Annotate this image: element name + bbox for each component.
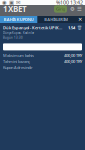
staticText: Bugün 13:30 bbox=[3, 36, 23, 39]
button[interactable]: BAHİSLERİM bbox=[37, 16, 75, 23]
staticText: ✕ bbox=[78, 16, 82, 23]
staticText: 1.54 bbox=[68, 25, 75, 30]
staticText: Giriş bbox=[56, 6, 65, 12]
staticText: BAHİS KUPONU bbox=[4, 17, 34, 22]
staticText: ⚙ ☰ bbox=[70, 6, 82, 12]
staticText: 🗑 bbox=[77, 25, 82, 30]
button[interactable]: BAHİS KUPONU bbox=[0, 16, 37, 23]
staticText: Maksimum bahis bbox=[3, 53, 34, 58]
staticText: ◉ ▣ ✉ bbox=[2, 0, 20, 6]
staticText: %100 13:42 bbox=[56, 0, 83, 6]
staticText: 400,00 TRY bbox=[64, 59, 82, 64]
staticText: BAHİSLERİM bbox=[44, 17, 68, 22]
staticText: Tahmini kazanç bbox=[3, 59, 30, 64]
staticText: Kupon Adresindir bbox=[3, 65, 33, 70]
staticText: Dünya Kupası. Kadınlar bbox=[3, 31, 34, 35]
staticText: 1XBET bbox=[3, 4, 27, 14]
staticText: Dük Espanyol - Kertetik UP (Kerebine Son… bbox=[3, 25, 63, 30]
staticText: 400,00 TRY bbox=[64, 53, 82, 58]
button[interactable]: Kapat bbox=[75, 16, 85, 23]
